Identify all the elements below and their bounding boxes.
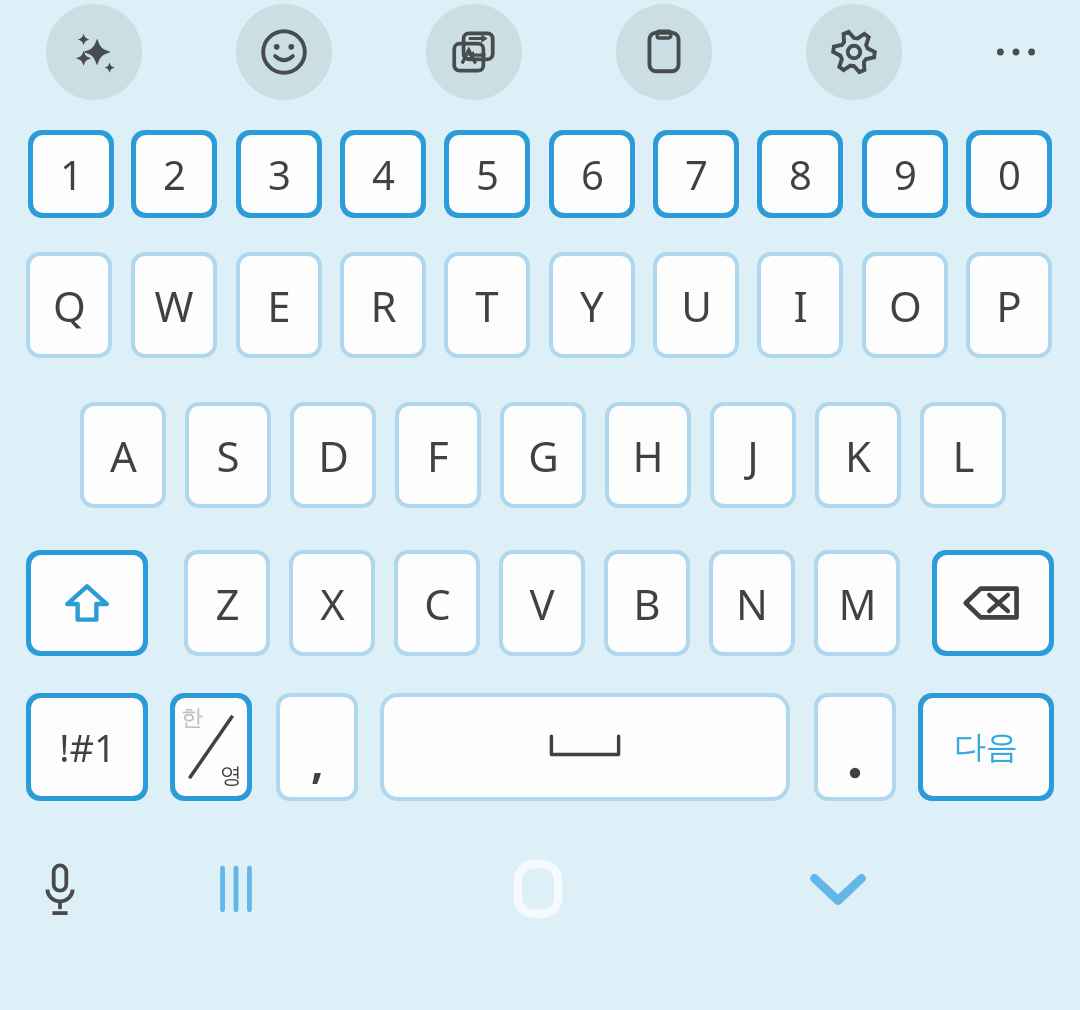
- button[interactable]: Comma: [280, 697, 354, 797]
- staticText: ,: [311, 731, 324, 791]
- button[interactable]: Clipboard: [616, 4, 712, 100]
- button[interactable]: X: [293, 554, 371, 652]
- staticText: N: [736, 575, 768, 632]
- staticText: 6: [581, 147, 604, 201]
- button[interactable]: Voice input: [22, 851, 98, 927]
- staticText: 5: [476, 147, 499, 201]
- button[interactable]: 다음: [923, 698, 1049, 796]
- button[interactable]: Hide keyboard: [800, 851, 876, 927]
- button[interactable]: Shift: [31, 555, 143, 651]
- staticText: !#1: [59, 721, 116, 773]
- button[interactable]: O: [866, 256, 944, 354]
- staticText: B: [633, 575, 661, 632]
- button[interactable]: 6: [554, 135, 630, 213]
- staticText: 4: [372, 147, 395, 201]
- staticText: K: [845, 427, 871, 484]
- button[interactable]: K: [819, 406, 897, 504]
- staticText: X: [320, 575, 345, 632]
- staticText: D: [318, 427, 349, 484]
- button[interactable]: L: [924, 406, 1002, 504]
- staticText: P: [996, 277, 1022, 334]
- staticText: M: [838, 575, 877, 632]
- button[interactable]: J: [714, 406, 792, 504]
- button[interactable]: Period: [818, 697, 892, 797]
- button[interactable]: E: [240, 256, 318, 354]
- button[interactable]: 0: [971, 135, 1047, 213]
- staticText: 영: [220, 762, 242, 790]
- staticText: 0: [998, 147, 1021, 201]
- staticText: Y: [580, 277, 604, 334]
- staticText: V: [529, 575, 555, 632]
- staticText: T: [475, 277, 499, 334]
- button[interactable]: P: [970, 256, 1048, 354]
- staticText: W: [154, 277, 194, 334]
- staticText: 한: [181, 704, 203, 732]
- staticText: A: [110, 427, 137, 484]
- button[interactable]: AI writing assist: [46, 4, 142, 100]
- button[interactable]: Recents: [198, 851, 274, 927]
- staticText: 다음: [954, 727, 1018, 767]
- button[interactable]: Emoji: [236, 4, 332, 100]
- staticText: 9: [894, 147, 917, 201]
- button[interactable]: N: [713, 554, 791, 652]
- staticText: J: [747, 427, 759, 484]
- staticText: U: [681, 277, 712, 334]
- staticText: R: [370, 277, 397, 334]
- button[interactable]: A: [84, 406, 162, 504]
- button[interactable]: Korean English toggle: [175, 698, 247, 796]
- button[interactable]: Home: [500, 851, 576, 927]
- button[interactable]: T: [448, 256, 526, 354]
- staticText: S: [216, 427, 240, 484]
- staticText: O: [889, 277, 922, 334]
- button[interactable]: H: [609, 406, 687, 504]
- staticText: F: [427, 427, 449, 484]
- button[interactable]: Settings: [806, 4, 902, 100]
- button[interactable]: V: [503, 554, 581, 652]
- button[interactable]: 4: [345, 135, 421, 213]
- button[interactable]: 8: [762, 135, 838, 213]
- button[interactable]: Y: [553, 256, 631, 354]
- button[interactable]: Q: [30, 256, 108, 354]
- button[interactable]: 3: [241, 135, 317, 213]
- button[interactable]: 7: [658, 135, 734, 213]
- button[interactable]: M: [818, 554, 896, 652]
- button[interactable]: 2: [136, 135, 212, 213]
- staticText: 8: [789, 147, 812, 201]
- button[interactable]: R: [344, 256, 422, 354]
- button[interactable]: W: [135, 256, 213, 354]
- staticText: 2: [163, 147, 186, 201]
- staticText: C: [424, 575, 451, 632]
- staticText: 7: [685, 147, 708, 201]
- staticText: Z: [215, 575, 240, 632]
- button[interactable]: C: [398, 554, 476, 652]
- button[interactable]: Z: [188, 554, 266, 652]
- button[interactable]: Backspace: [937, 555, 1049, 651]
- button[interactable]: I: [761, 256, 839, 354]
- staticText: Q: [53, 277, 86, 334]
- staticText: I: [793, 277, 808, 334]
- button[interactable]: G: [504, 406, 582, 504]
- button[interactable]: !#1: [31, 698, 143, 796]
- staticText: 3: [268, 147, 291, 201]
- button[interactable]: 5: [449, 135, 525, 213]
- button[interactable]: Space: [384, 697, 786, 797]
- staticText: 1: [60, 147, 83, 201]
- button[interactable]: More options: [968, 4, 1064, 100]
- staticText: H: [632, 427, 664, 484]
- staticText: E: [267, 277, 291, 334]
- button[interactable]: 9: [867, 135, 943, 213]
- staticText: L: [952, 427, 975, 484]
- button[interactable]: Translate: [426, 4, 522, 100]
- button[interactable]: F: [399, 406, 477, 504]
- button[interactable]: U: [657, 256, 735, 354]
- button[interactable]: 1: [33, 135, 109, 213]
- staticText: G: [528, 427, 559, 484]
- button[interactable]: D: [294, 406, 372, 504]
- button[interactable]: S: [189, 406, 267, 504]
- button[interactable]: B: [608, 554, 686, 652]
